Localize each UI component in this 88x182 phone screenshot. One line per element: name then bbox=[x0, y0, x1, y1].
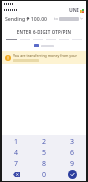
button[interactable]: 5 bbox=[30, 147, 58, 158]
staticText: ENTER 6-DIGIT OTP/PIN bbox=[2, 29, 86, 35]
staticText: 2 bbox=[42, 137, 47, 147]
staticText: 9 bbox=[70, 159, 75, 169]
staticText: to bbox=[54, 16, 58, 21]
button[interactable]: 6 bbox=[58, 147, 86, 158]
button[interactable]: 7 bbox=[2, 158, 30, 169]
button[interactable]: Backspace bbox=[2, 169, 30, 180]
button[interactable]: OTP entry field bbox=[6, 39, 82, 40]
button[interactable]: 9 bbox=[58, 158, 86, 169]
staticText: 5 bbox=[42, 148, 47, 158]
button[interactable]: 8 bbox=[30, 158, 58, 169]
staticText: 7 bbox=[14, 159, 19, 169]
button[interactable]: Recipient account bbox=[54, 16, 83, 21]
staticText: 6 bbox=[70, 148, 75, 158]
staticText: You are transferring money from your acc… bbox=[13, 53, 83, 58]
button[interactable]: 1 bbox=[2, 136, 30, 147]
staticText: 4 bbox=[14, 148, 19, 158]
button[interactable]: 3 bbox=[58, 136, 86, 147]
button[interactable]: Confirm bbox=[58, 169, 86, 180]
button[interactable]: 0 bbox=[30, 169, 58, 180]
staticText: 0 bbox=[42, 170, 47, 180]
button[interactable]: 2 bbox=[30, 136, 58, 147]
staticText: 3 bbox=[70, 137, 75, 147]
staticText: 1 bbox=[14, 137, 19, 147]
staticText: Sending ₱ 100.00 bbox=[5, 15, 48, 22]
button[interactable]: 4 bbox=[2, 147, 30, 158]
staticText: UNI bbox=[69, 7, 79, 14]
staticText: 8 bbox=[42, 159, 47, 169]
button[interactable]: Resend code bbox=[34, 44, 39, 47]
button[interactable]: Brand logo bbox=[69, 7, 84, 14]
button[interactable]: Warning bbox=[5, 53, 83, 62]
other: Warning bbox=[5, 55, 11, 61]
